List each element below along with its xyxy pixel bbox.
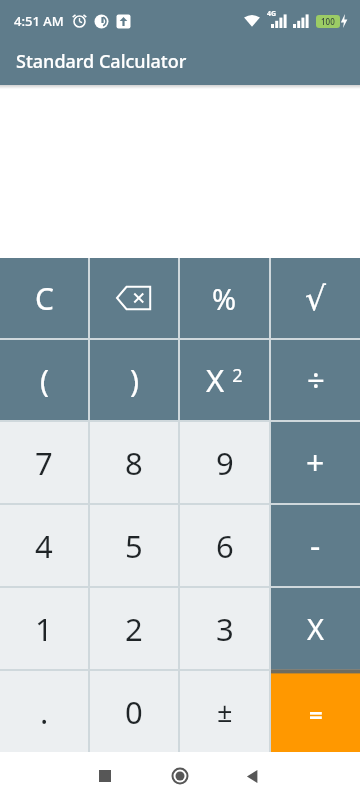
staticText: 4 (35, 525, 53, 567)
staticText: 8 (125, 442, 143, 484)
button[interactable]: . (0, 671, 88, 752)
staticText: 3 (216, 608, 234, 650)
staticText: % (212, 279, 237, 318)
button[interactable]: ± (180, 671, 269, 752)
button[interactable]: 4 (0, 505, 88, 586)
staticText: 5 (125, 525, 143, 567)
staticText: ± (217, 693, 233, 730)
staticText: √ (305, 279, 327, 317)
staticText: ) (130, 360, 139, 401)
staticText: 9 (216, 442, 234, 484)
staticText: X 2 (206, 359, 243, 401)
button[interactable]: ( (0, 340, 88, 420)
staticText: 4:51 AM (14, 12, 64, 30)
button[interactable]: ) (90, 340, 178, 420)
staticText: + (306, 441, 325, 485)
button[interactable]: 6 (180, 505, 269, 586)
button[interactable]: √ (271, 258, 360, 338)
button[interactable]: 1 (0, 588, 88, 669)
staticText: = (309, 698, 323, 731)
button[interactable]: X (271, 588, 360, 669)
button[interactable]: - (271, 505, 360, 586)
button[interactable]: % (180, 258, 269, 338)
staticText: X (307, 609, 324, 648)
button[interactable]: 3 (180, 588, 269, 669)
staticText: 6 (216, 525, 234, 567)
button[interactable]: 0 (90, 671, 178, 752)
button[interactable]: 9 (180, 422, 269, 503)
staticText: 7 (35, 442, 53, 484)
button[interactable]: X 2 (180, 340, 269, 420)
button[interactable] (160, 752, 200, 800)
button[interactable]: 7 (0, 422, 88, 503)
staticText: . (40, 691, 49, 733)
button[interactable] (231, 752, 271, 800)
staticText: ( (40, 360, 49, 401)
staticText: C (35, 278, 54, 319)
staticText: 2 (125, 608, 143, 650)
button[interactable]: 2 (90, 588, 178, 669)
button[interactable]: 8 (90, 422, 178, 503)
staticText: 4G (267, 9, 277, 19)
button[interactable]: = (271, 671, 360, 752)
button[interactable]: 5 (90, 505, 178, 586)
staticText: Standard Calculator (16, 49, 187, 74)
button[interactable]: C (0, 258, 88, 338)
button[interactable] (85, 752, 125, 800)
staticText: ÷ (307, 359, 325, 401)
staticText: 100 (321, 16, 335, 27)
staticText: 0 (125, 691, 143, 733)
button[interactable] (90, 258, 178, 338)
button[interactable]: ÷ (271, 340, 360, 420)
staticText: 1 (35, 608, 53, 650)
staticText: - (310, 524, 321, 568)
button[interactable]: + (271, 422, 360, 503)
